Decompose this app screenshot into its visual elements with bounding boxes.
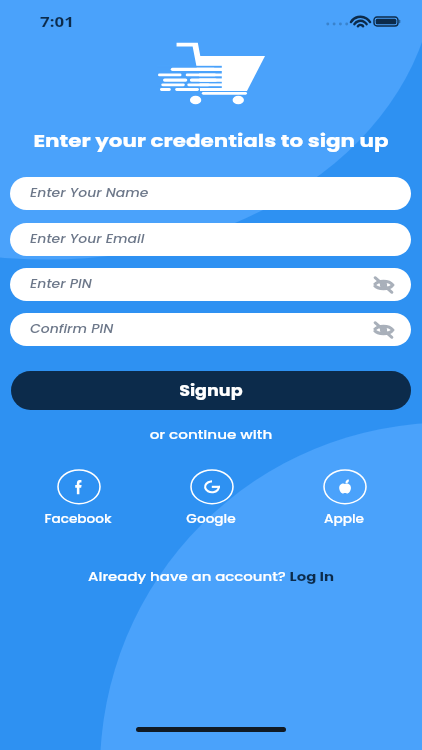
staticText: or continue with [0,426,422,452]
button[interactable]: Confirm PIN [10,313,411,346]
staticText: Enter your credentials to sign up [0,128,422,158]
staticText: 7:01 [40,11,74,31]
staticText: Google [140,511,282,537]
staticText: Already have an account? Log In [0,568,422,594]
staticText: Apple [273,511,415,537]
button[interactable]: Enter Your Name [10,177,411,210]
staticText: Enter Your Name [30,185,149,202]
button[interactable]: Enter Your Email [10,223,411,256]
staticText: Confirm PIN [30,321,114,338]
button[interactable]: Signup [11,371,411,410]
staticText: Signup [179,380,243,401]
staticText: Enter PIN [30,276,92,293]
staticText: Enter Your Email [30,231,146,248]
other: Toggle PIN visibility [373,323,394,337]
other: Toggle PIN visibility [373,278,394,292]
button[interactable]: Enter PIN [10,268,411,301]
button[interactable]: Continue with Facebook [49,465,109,509]
button[interactable]: Continue with Apple [315,465,375,509]
button[interactable]: Already have an account? Log In [0,568,422,594]
button[interactable]: Continue with Google [182,465,242,509]
staticText: Facebook [7,511,149,537]
